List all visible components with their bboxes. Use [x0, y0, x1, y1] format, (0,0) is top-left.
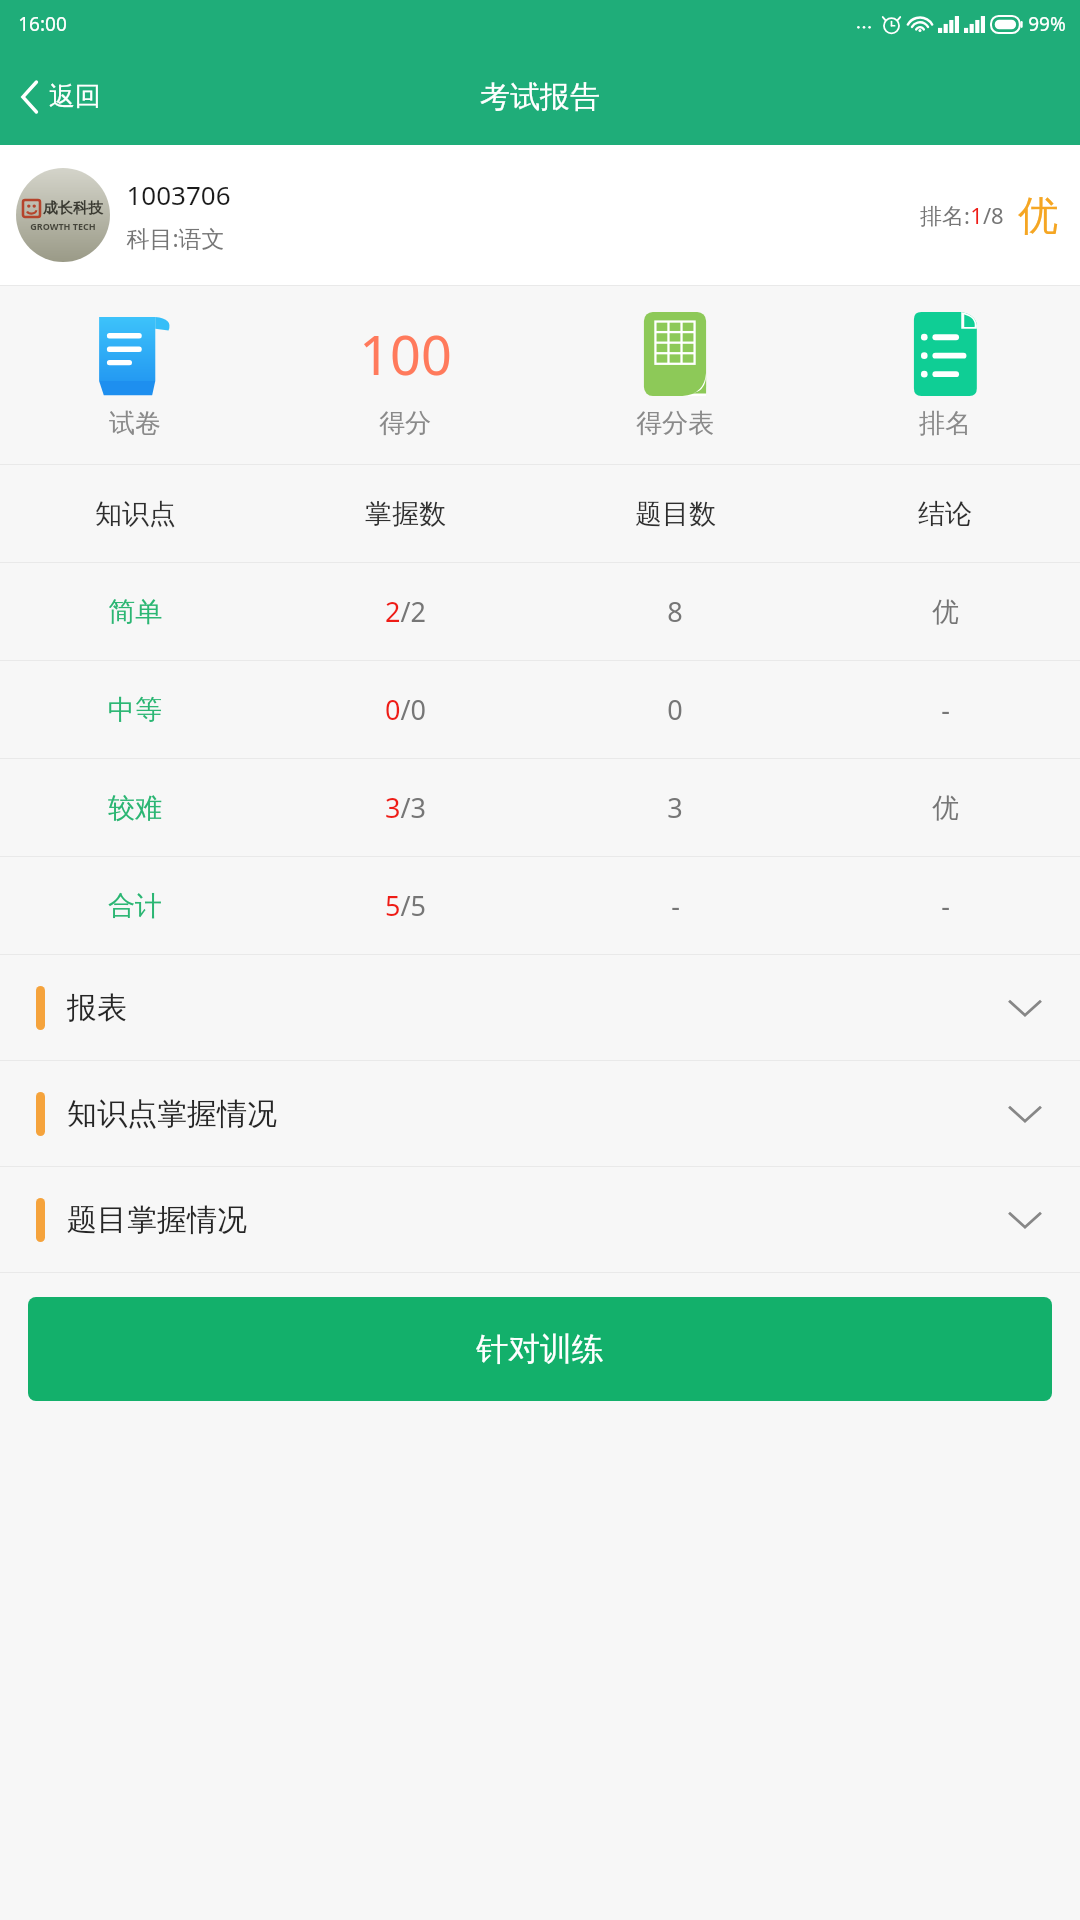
other: 展开 报表	[1006, 996, 1044, 1020]
staticText: -	[671, 887, 680, 924]
button[interactable]: 返回	[0, 72, 123, 121]
button[interactable]: 头像	[16, 168, 110, 262]
button[interactable]: 得分表	[540, 286, 810, 464]
staticText: 知识点掌握情况	[67, 1095, 277, 1133]
button[interactable]: 针对训练	[28, 1297, 1052, 1401]
button[interactable]: 报表	[0, 955, 1080, 1060]
staticText: 排名:	[920, 200, 970, 230]
staticText: 排名	[919, 407, 971, 440]
staticText: 5/5	[385, 887, 426, 924]
staticText: 得分表	[636, 407, 714, 440]
staticText: 返回	[49, 80, 101, 113]
staticText: 中等	[108, 693, 162, 727]
staticText: 16:00	[18, 11, 67, 37]
staticText: 0/0	[385, 691, 426, 728]
button[interactable]: 知识点掌握情况	[0, 1061, 1080, 1166]
staticText: -	[941, 691, 950, 728]
staticText: 1003706	[126, 177, 231, 212]
button[interactable]: 简单	[0, 563, 1080, 660]
staticText: 优	[1018, 190, 1058, 240]
button[interactable]: 合计	[0, 857, 1080, 954]
staticText: GROWTH TECH	[30, 220, 96, 232]
button[interactable]: 中等	[0, 661, 1080, 758]
staticText: 成长科技	[43, 199, 103, 218]
staticText: 99%	[1028, 11, 1066, 37]
button[interactable]: 试卷	[0, 286, 270, 464]
staticText: 掌握数	[365, 497, 446, 531]
staticText: 3/3	[385, 789, 426, 826]
staticText: 优	[932, 791, 959, 825]
button[interactable]: 100	[270, 286, 540, 464]
staticText: 试卷	[109, 407, 161, 440]
staticText: 考试报告	[480, 78, 600, 116]
staticText: 题目掌握情况	[67, 1201, 247, 1239]
staticText: 3	[667, 789, 683, 826]
staticText: 知识点	[95, 497, 176, 531]
staticText: 合计	[108, 889, 162, 923]
staticText: 科目:语文	[126, 222, 225, 253]
staticText: 针对训练	[476, 1329, 604, 1369]
button[interactable]: 题目掌握情况	[0, 1167, 1080, 1272]
staticText: 题目数	[635, 497, 716, 531]
staticText: 8	[667, 593, 683, 630]
staticText: 2/2	[385, 593, 426, 630]
staticText: 0	[667, 691, 683, 728]
staticText: 得分	[379, 407, 431, 440]
staticText: 简单	[108, 595, 162, 629]
staticText: 1/8	[970, 200, 1004, 230]
button[interactable]: 较难	[0, 759, 1080, 856]
staticText: -	[941, 887, 950, 924]
staticText: 优	[932, 595, 959, 629]
staticText: 100	[359, 317, 452, 391]
other: 展开 题目掌握情况	[1006, 1208, 1044, 1232]
button[interactable]: 排名	[810, 286, 1080, 464]
staticText: 结论	[918, 497, 972, 531]
staticText: 较难	[108, 791, 162, 825]
other: 展开 知识点掌握情况	[1006, 1102, 1044, 1126]
staticText: 报表	[67, 989, 127, 1027]
